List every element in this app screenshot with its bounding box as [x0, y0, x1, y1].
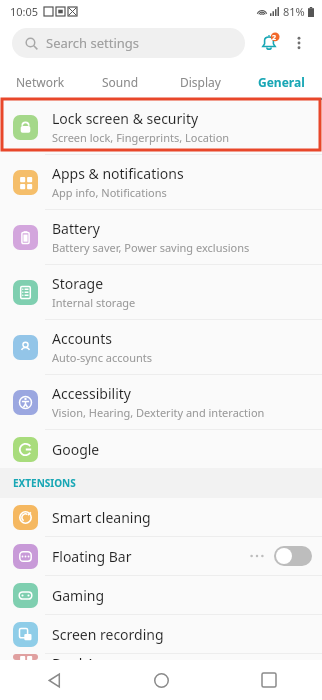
button[interactable]: Dual App	[0, 654, 322, 660]
button[interactable]: Back	[0, 660, 108, 700]
staticText: Floating Bar	[52, 547, 132, 566]
staticText: EXTENSIONS	[13, 476, 76, 490]
staticText: 2	[272, 33, 277, 43]
button[interactable]: Storage	[0, 265, 322, 319]
button[interactable]: Network	[0, 64, 80, 100]
button[interactable]: Floating Bar toggle	[274, 546, 312, 566]
button[interactable]: More options	[286, 30, 312, 56]
button[interactable]: Accessibility	[0, 375, 322, 429]
staticText: Apps & notifications	[52, 164, 184, 183]
button[interactable]: Sound	[80, 64, 160, 100]
staticText: Lock screen & security	[52, 109, 199, 128]
staticText: Auto-sync accounts	[52, 350, 153, 365]
staticText: 81%	[283, 4, 305, 19]
staticText: Storage	[52, 274, 104, 293]
staticText: Accounts	[52, 329, 112, 348]
button[interactable]: Floating Bar	[0, 537, 322, 575]
staticText: Display	[180, 74, 221, 90]
button[interactable]: Home	[108, 660, 215, 700]
staticText: 10:05	[10, 4, 39, 19]
button[interactable]: Gaming	[0, 576, 322, 614]
button[interactable]: Smart cleaning	[0, 498, 322, 536]
button[interactable]: Search settings	[12, 28, 245, 58]
staticText: Search settings	[46, 34, 140, 52]
staticText: Screen recording	[52, 625, 164, 644]
staticText: Screen lock, Fingerprints, Location	[52, 130, 230, 145]
staticText: Battery	[52, 219, 100, 238]
staticText: Sound	[102, 74, 139, 90]
staticText: General	[258, 74, 305, 90]
staticText: Dual App	[52, 654, 113, 660]
button[interactable]: Accounts	[0, 320, 322, 374]
staticText: Network	[16, 74, 65, 90]
staticText: Vision, Hearing, Dexterity and interacti…	[52, 405, 265, 420]
staticText: App info, Notifications	[52, 185, 167, 200]
button[interactable]: Display	[160, 64, 241, 100]
button[interactable]: Notifications	[254, 28, 284, 58]
button[interactable]: Apps & notifications	[0, 155, 322, 209]
staticText: Internal storage	[52, 295, 136, 310]
button[interactable]: General	[241, 64, 322, 100]
staticText: Smart cleaning	[52, 508, 151, 527]
button[interactable]: Screen recording	[0, 615, 322, 653]
staticText: Gaming	[52, 586, 105, 605]
staticText: Battery saver, Power saving exclusions	[52, 240, 250, 255]
button[interactable]: Recents	[215, 660, 322, 700]
button[interactable]: Battery	[0, 210, 322, 264]
staticText: Google	[52, 440, 100, 459]
button[interactable]: Lock screen & security	[0, 100, 322, 154]
button[interactable]: Google	[0, 430, 322, 468]
staticText: Accessibility	[52, 384, 131, 403]
